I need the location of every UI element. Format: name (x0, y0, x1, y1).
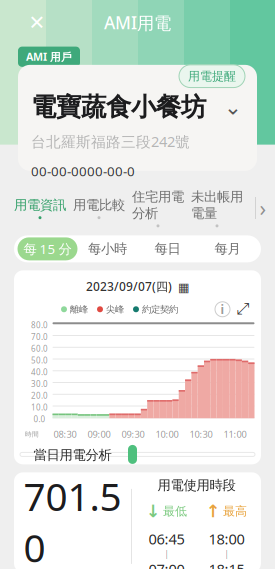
staticText: 701.50 (23, 470, 121, 569)
button[interactable]: 住宅用電分析 (132, 189, 184, 227)
staticText: 每 15 分 (23, 240, 71, 258)
staticText: ⌄ (224, 95, 242, 119)
staticText: 電寶蔬食小餐坊 (31, 92, 206, 123)
staticText: 當日用電分析 (33, 447, 111, 463)
staticText: AMI 用戶 (26, 50, 72, 64)
staticText: 用電使用時段 (157, 477, 235, 493)
staticText: 18:15 (208, 559, 244, 569)
button[interactable]: 每日 (137, 237, 197, 260)
staticText: | (224, 549, 228, 559)
staticText: 台北羅斯福路三段242號 (31, 132, 190, 151)
button[interactable]: 用電提醒 (179, 65, 245, 87)
staticText: 用電提醒 (188, 69, 236, 83)
staticText: 09:00 (87, 428, 110, 440)
staticText: 10:00 (155, 428, 178, 440)
staticText: 10.0 (31, 402, 48, 413)
staticText: 離峰 (70, 303, 88, 315)
staticText: 住宅用電分析 (132, 189, 184, 221)
staticText: 50.0 (31, 355, 48, 366)
staticText: 最高 (223, 504, 247, 519)
staticText: 0.0 (33, 414, 45, 424)
button[interactable]: 關閉 (22, 8, 52, 38)
staticText: 80.0 (31, 320, 48, 330)
button[interactable]: 每 15 分 (17, 237, 77, 260)
button[interactable]: 用電比較 (73, 197, 125, 219)
staticText: AMI用電 (104, 11, 171, 34)
staticText: 每月 (214, 241, 240, 257)
staticText: 每小時 (88, 241, 127, 257)
staticText: 用電資訊 (14, 197, 66, 213)
button[interactable]: 未出帳用電量 (191, 189, 243, 227)
button[interactable]: 每月 (197, 237, 257, 260)
button[interactable]: 展開 (222, 98, 244, 116)
staticText: 09:30 (121, 428, 144, 440)
button[interactable]: 說明 (215, 302, 230, 317)
staticText: 約定契約 (142, 303, 178, 315)
staticText: 11:00 (223, 428, 246, 440)
staticText: 08:30 (53, 428, 76, 440)
staticText: 10:30 (189, 428, 212, 440)
staticText: 70.0 (31, 332, 48, 342)
staticText: 00-00-0000-00-0 (31, 162, 135, 180)
staticText: 18:00 (208, 529, 244, 549)
staticText: 40.0 (31, 367, 48, 377)
staticText: ↑ (206, 501, 221, 521)
staticText: 07:00 (148, 559, 184, 569)
staticText: 時間 (25, 430, 39, 438)
staticText: ↓ (146, 501, 161, 521)
staticText: 30.0 (31, 379, 48, 389)
staticText: 尖峰 (106, 303, 124, 315)
button[interactable]: 用電資訊 (14, 197, 66, 219)
button[interactable]: 時間軸滑桿 (128, 445, 137, 464)
staticText: 20.0 (31, 390, 48, 401)
staticText: 最低 (163, 504, 187, 519)
staticText: › (259, 194, 266, 222)
staticText: 每日 (154, 241, 180, 257)
staticText: | (164, 549, 168, 559)
button[interactable]: 每小時 (77, 237, 137, 260)
button[interactable]: 更多分頁 (255, 197, 271, 219)
staticText: ⤢ (236, 301, 249, 317)
staticText: 60.0 (31, 343, 48, 354)
staticText: i (220, 301, 224, 317)
staticText: ✕ (28, 11, 45, 34)
staticText: 2023/09/07(四) ▦ (86, 278, 189, 294)
button[interactable]: 全螢幕 (235, 301, 251, 317)
staticText: 未出帳用電量 (191, 189, 243, 221)
staticText: 用電比較 (73, 197, 125, 213)
staticText: 06:45 (148, 529, 184, 549)
